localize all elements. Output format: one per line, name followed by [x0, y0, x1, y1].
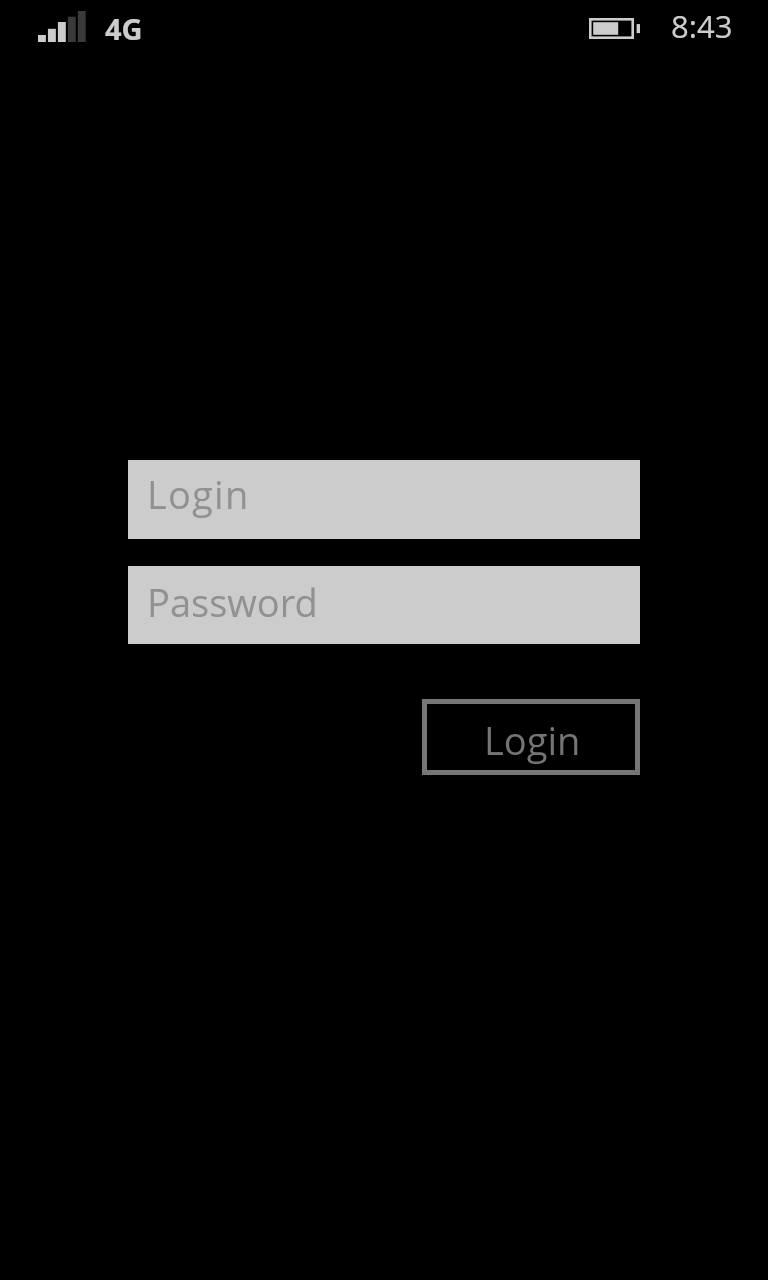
staticText: 8:43: [671, 5, 733, 47]
staticText: Password: [147, 576, 318, 628]
staticText: 4G: [105, 9, 143, 48]
other: Battery: [589, 18, 640, 39]
button[interactable]: Login field: [128, 460, 640, 539]
button[interactable]: Password field: [128, 566, 640, 644]
button[interactable]: Login: [422, 699, 640, 775]
staticText: Login: [484, 714, 581, 766]
staticText: Login: [147, 468, 250, 520]
other: Signal strength: [38, 11, 86, 42]
